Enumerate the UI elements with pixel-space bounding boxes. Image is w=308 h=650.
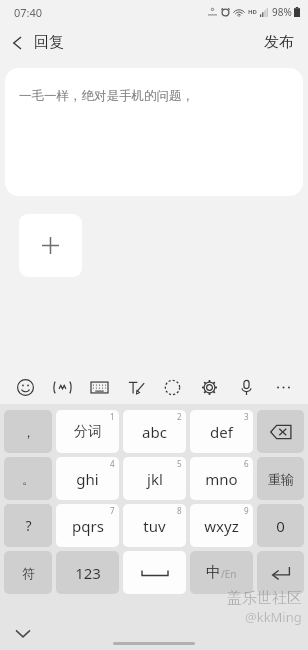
button[interactable]: wxyz — [190, 504, 253, 547]
button[interactable]: 分词 — [56, 410, 119, 453]
staticText: 07:40 — [14, 5, 43, 20]
staticText: 分词 — [74, 423, 102, 441]
staticText: HD — [248, 8, 257, 16]
button[interactable]: Keyboard layout — [86, 374, 112, 400]
button[interactable]: abc — [123, 410, 186, 453]
button[interactable]: def — [190, 410, 253, 453]
staticText: ， — [22, 424, 35, 440]
staticText: 98% — [272, 5, 292, 19]
button[interactable]: pqrs — [56, 504, 119, 547]
button[interactable]: 重输 — [257, 457, 304, 500]
button[interactable]: Kaomoji — [49, 374, 75, 400]
staticText: jkl — [147, 469, 163, 489]
button[interactable]: mno — [190, 457, 253, 500]
staticText: 1 — [110, 411, 115, 422]
button[interactable]: 中 — [190, 551, 253, 594]
staticText: ? — [25, 516, 32, 535]
staticText: 6 — [244, 458, 249, 469]
staticText: 盖乐世社区 — [227, 589, 302, 608]
staticText: abc — [142, 422, 167, 442]
staticText: 一毛一样，绝对是手机的问题， — [19, 88, 194, 104]
staticText: 5 — [177, 458, 182, 469]
button[interactable]: Space — [123, 551, 186, 594]
staticText: /En — [221, 567, 237, 581]
button[interactable]: 123 — [56, 551, 119, 594]
staticText: 。 — [22, 471, 35, 487]
button[interactable]: Voice input — [233, 374, 259, 400]
button[interactable]: ， — [4, 410, 52, 453]
staticText: 7 — [110, 505, 115, 516]
staticText: pqrs — [72, 516, 104, 536]
button[interactable]: Enter — [257, 551, 304, 594]
staticText: 4 — [110, 458, 115, 469]
staticText: 2 — [177, 411, 182, 422]
staticText: 重输 — [268, 471, 294, 487]
button[interactable]: Handwriting — [123, 374, 149, 400]
staticText: 回复 — [34, 33, 64, 52]
other: Back — [12, 35, 23, 51]
staticText: 发布 — [264, 33, 294, 52]
staticText: @kkMing — [245, 608, 302, 626]
staticText: 9 — [244, 505, 249, 516]
button[interactable]: 0 — [257, 504, 304, 547]
button[interactable]: Hide keyboard — [8, 618, 38, 648]
staticText: 3 — [244, 411, 249, 422]
button[interactable]: 符 — [4, 551, 52, 594]
button[interactable]: Backspace — [257, 410, 304, 453]
button[interactable]: ? — [4, 504, 52, 547]
staticText: ghi — [76, 469, 99, 489]
button[interactable]: Emoji — [12, 374, 38, 400]
staticText: wxyz — [204, 516, 239, 536]
button[interactable]: ghi — [56, 457, 119, 500]
staticText: def — [210, 422, 233, 442]
staticText: tuv — [143, 516, 166, 536]
staticText: 中 — [206, 563, 221, 582]
button[interactable]: More options — [270, 374, 296, 400]
staticText: 符 — [22, 565, 35, 581]
button[interactable]: 一毛一样，绝对是手机的问题， — [5, 68, 303, 196]
staticText: 123 — [75, 563, 101, 583]
button[interactable]: Settings — [196, 374, 222, 400]
button[interactable]: Resize keyboard — [159, 374, 185, 400]
button[interactable]: Add attachment — [19, 214, 82, 277]
button[interactable]: 发布 — [250, 27, 308, 58]
button[interactable]: Back — [0, 29, 72, 56]
staticText: mno — [205, 469, 238, 489]
button[interactable]: tuv — [123, 504, 186, 547]
button[interactable]: 。 — [4, 457, 52, 500]
button[interactable]: jkl — [123, 457, 186, 500]
staticText: 0 — [276, 516, 285, 536]
staticText: 8 — [177, 505, 182, 516]
